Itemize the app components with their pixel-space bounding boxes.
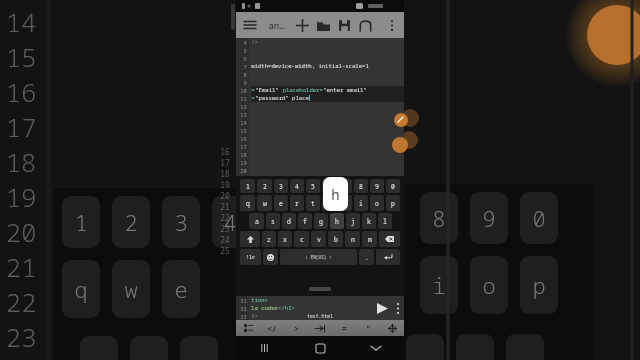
- button[interactable]: Symbols: [240, 249, 261, 265]
- staticText: 2: [263, 182, 267, 191]
- button[interactable]: q: [240, 195, 255, 211]
- button[interactable]: t: [306, 195, 320, 211]
- button[interactable]: 1: [240, 179, 255, 193]
- button[interactable]: w: [257, 195, 272, 211]
- button[interactable]: f: [298, 213, 312, 229]
- staticText: =: [342, 323, 347, 334]
- staticText: 24: [240, 199, 247, 206]
- button[interactable]: Run: [373, 299, 391, 317]
- button[interactable]: Home: [292, 336, 348, 360]
- staticText: j: [351, 217, 355, 226]
- staticText: 15: [240, 127, 247, 134]
- staticText: 1: [246, 182, 250, 191]
- button[interactable]: h: [330, 213, 344, 229]
- button[interactable]: e: [274, 195, 288, 211]
- button[interactable]: Enter: [376, 249, 400, 265]
- button[interactable]: y: [322, 195, 336, 211]
- staticText: z: [267, 235, 271, 244]
- staticText: h: [331, 185, 340, 204]
- staticText: 22: [5, 284, 37, 319]
- staticText: c: [300, 235, 304, 244]
- staticText: 5: [243, 47, 247, 54]
- staticText: 24: [220, 234, 230, 245]
- staticText: ‹ EN(US) ›: [305, 254, 332, 260]
- staticText: e: [174, 274, 188, 304]
- button[interactable]: k: [362, 213, 376, 229]
- button[interactable]: Emoji: [263, 249, 278, 265]
- staticText: 0: [391, 182, 395, 191]
- staticText: 14: [5, 4, 37, 39]
- button[interactable]: Save: [334, 12, 355, 38]
- button[interactable]: an…: [260, 12, 292, 38]
- staticText: 23: [5, 319, 37, 354]
- staticText: 19: [220, 179, 230, 190]
- staticText: n: [351, 235, 355, 244]
- button[interactable]: Greater than: [284, 320, 308, 336]
- button[interactable]: x: [278, 231, 292, 247]
- button[interactable]: More: [394, 299, 402, 317]
- staticText: an…: [268, 19, 285, 31]
- staticText: k: [367, 217, 371, 226]
- staticText: 20: [240, 167, 247, 174]
- staticText: 17: [220, 157, 230, 168]
- staticText: 19: [5, 179, 37, 214]
- button[interactable]: d: [282, 213, 296, 229]
- button[interactable]: m: [362, 231, 377, 247]
- staticText: b: [334, 235, 338, 244]
- button[interactable]: z: [262, 231, 276, 247]
- button[interactable]: Menu: [239, 12, 260, 38]
- button[interactable]: Backspace: [379, 231, 400, 247]
- button[interactable]: More options: [381, 12, 402, 38]
- button[interactable]: n: [345, 231, 360, 247]
- staticText: 18: [240, 151, 247, 158]
- staticText: d: [287, 217, 291, 226]
- button[interactable]: u: [338, 195, 352, 211]
- button[interactable]: b: [328, 231, 343, 247]
- button[interactable]: Open folder: [313, 12, 334, 38]
- button[interactable]: s: [266, 213, 280, 229]
- button[interactable]: o: [370, 195, 384, 211]
- button[interactable]: Quote: [356, 320, 380, 336]
- button[interactable]: Undo: [355, 12, 376, 38]
- staticText: 18: [5, 144, 37, 179]
- button[interactable]: 8: [354, 179, 368, 193]
- button[interactable]: Shift: [240, 231, 260, 247]
- button[interactable]: 5: [306, 179, 320, 193]
- staticText: t: [311, 199, 315, 208]
- button[interactable]: Close tag: [260, 320, 284, 336]
- staticText: 4: [223, 207, 237, 237]
- button[interactable]: .: [359, 249, 374, 265]
- button[interactable]: 0: [386, 179, 400, 193]
- button[interactable]: 2: [257, 179, 272, 193]
- button[interactable]: 4: [290, 179, 304, 193]
- staticText: 11: [240, 95, 247, 102]
- button[interactable]: New file: [292, 12, 313, 38]
- button[interactable]: 7: [338, 179, 352, 193]
- button[interactable]: 9: [370, 179, 384, 193]
- button[interactable]: 3: [274, 179, 288, 193]
- button[interactable]: a: [249, 213, 264, 229]
- button[interactable]: Recents: [236, 336, 292, 360]
- button[interactable]: p: [386, 195, 400, 211]
- button[interactable]: Tab: [308, 320, 332, 336]
- staticText: p: [391, 199, 395, 208]
- button[interactable]: i: [354, 195, 368, 211]
- staticText: 1: [74, 207, 88, 237]
- button[interactable]: Equals: [332, 320, 356, 336]
- staticText: .: [365, 253, 369, 262]
- staticText: 33: [240, 313, 247, 320]
- button[interactable]: v: [311, 231, 326, 247]
- button[interactable]: j: [346, 213, 360, 229]
- button[interactable]: ‹ EN(US) ›: [280, 249, 357, 265]
- button[interactable]: 6: [322, 179, 336, 193]
- button[interactable]: Outline: [236, 320, 260, 336]
- button[interactable]: r: [290, 195, 304, 211]
- button[interactable]: Back: [348, 336, 404, 360]
- button[interactable]: l: [378, 213, 392, 229]
- button[interactable]: g: [314, 213, 328, 229]
- staticText: 4: [295, 182, 299, 191]
- button[interactable]: c: [294, 231, 309, 247]
- button[interactable]: Move: [380, 320, 404, 336]
- staticText: 17: [240, 143, 247, 150]
- staticText: 3: [279, 182, 283, 191]
